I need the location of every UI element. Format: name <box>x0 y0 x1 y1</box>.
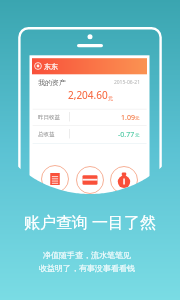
staticText: 总收益 <box>38 131 55 138</box>
staticText: 2015-06-21 <box>100 79 140 86</box>
staticText: 元 <box>135 133 140 139</box>
staticText: 账户查询 一目了然 <box>0 211 180 233</box>
staticText: 1.09 <box>121 113 135 123</box>
staticText: 东东 <box>44 62 58 71</box>
staticText: 收益明了，有事没事看看钱 <box>0 263 177 273</box>
staticText: 昨日收益 <box>38 114 60 121</box>
staticText: -0.77 <box>118 130 135 140</box>
button[interactable]: Savings <box>110 166 138 194</box>
button[interactable]: Statement <box>41 165 69 193</box>
staticText: 元 <box>135 116 140 122</box>
button[interactable]: Bank card <box>76 166 104 194</box>
staticText: 净值随手查，流水笔笔见 <box>0 250 177 260</box>
staticText: 我的资产 <box>38 78 66 87</box>
staticText: 2,204.60 <box>68 88 108 102</box>
staticText: 元 <box>108 95 113 101</box>
